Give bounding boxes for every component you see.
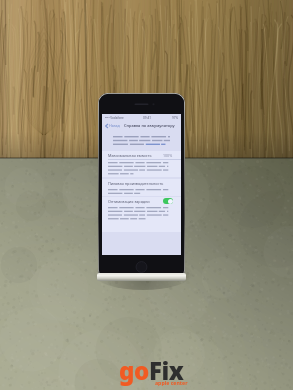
- staticText: 100%: [163, 153, 173, 158]
- staticText: Назад: [109, 123, 120, 128]
- staticText: go: [119, 354, 149, 387]
- staticText: •••• Vodafone: [105, 116, 124, 120]
- staticText: Максимальная емкость: [108, 153, 152, 158]
- button[interactable]: Оптимизация зарядки: [108, 198, 173, 204]
- staticText: Пиковая производительность: [108, 181, 164, 186]
- staticText: apple center: [155, 379, 188, 386]
- button[interactable]: Назад: [104, 122, 121, 129]
- staticText: Fix: [149, 354, 184, 387]
- staticText: 97%: [172, 116, 178, 120]
- button[interactable]: Оптимизация зарядки, включено: [163, 198, 173, 204]
- staticText: 09:41: [143, 116, 152, 120]
- staticText: Оптимизация зарядки: [108, 199, 150, 204]
- staticText: Справка по аккумулятору: [124, 123, 175, 128]
